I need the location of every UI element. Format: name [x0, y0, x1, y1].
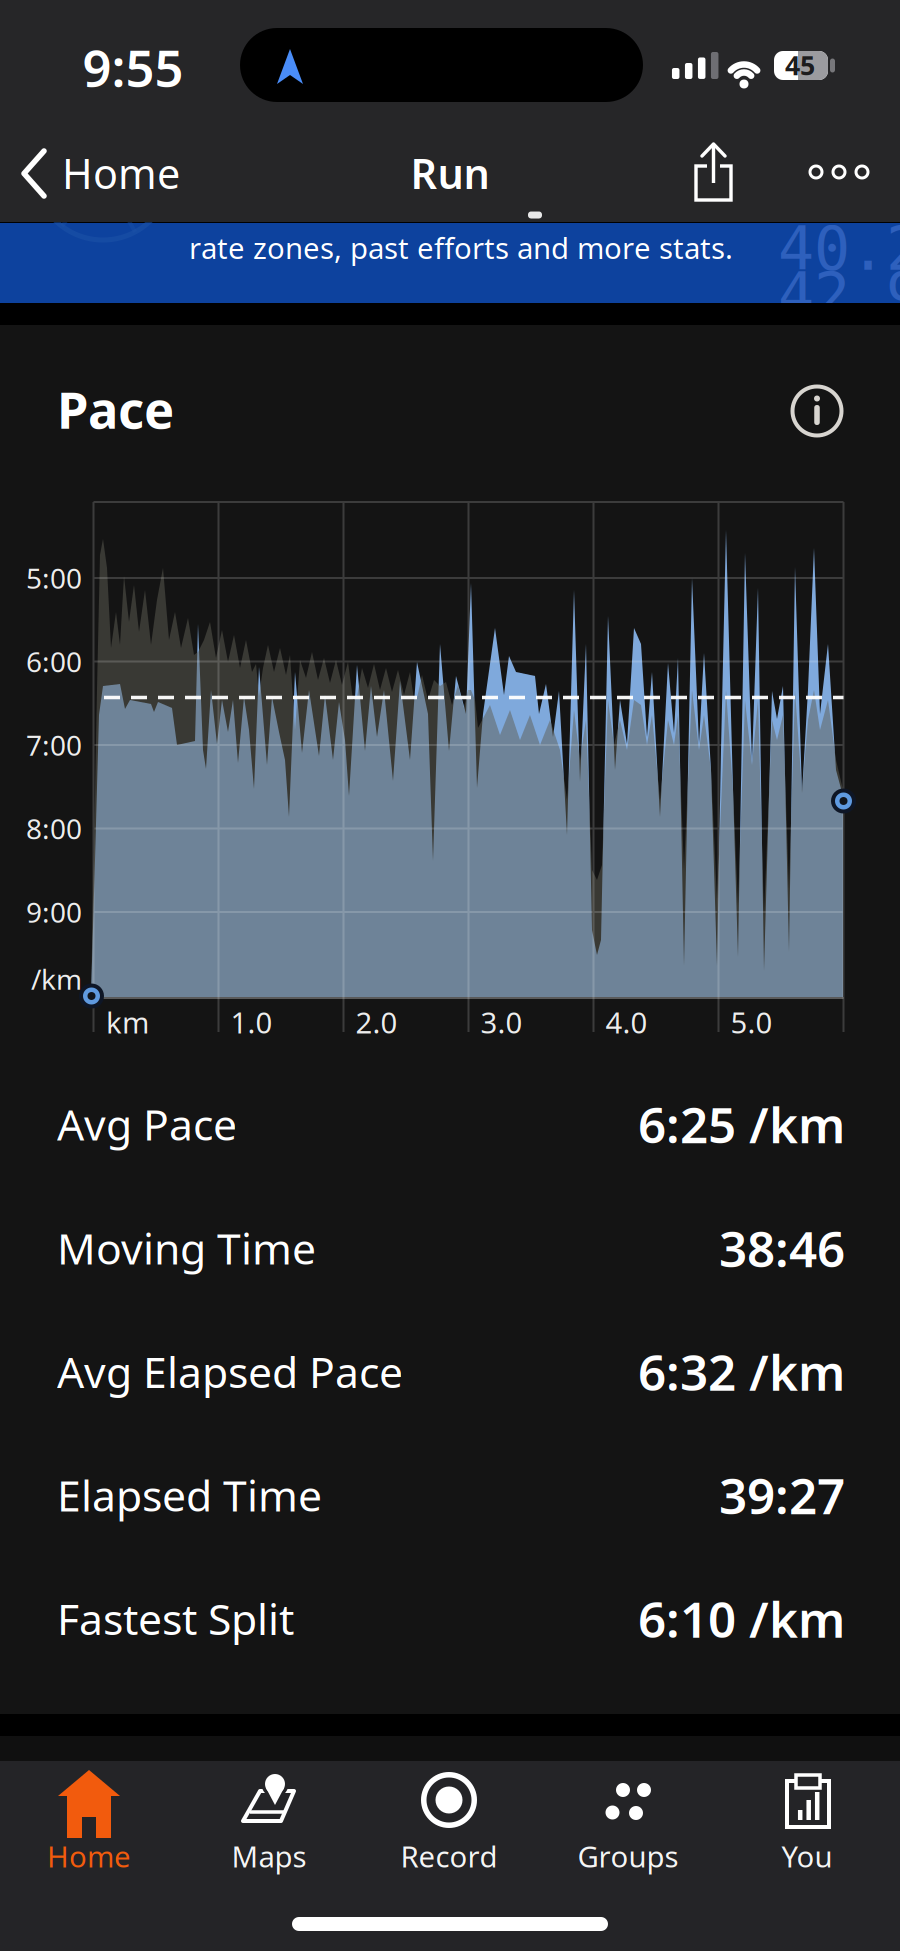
- staticText: Home: [47, 1836, 131, 1875]
- staticText: Home: [62, 146, 180, 200]
- button[interactable]: You: [717, 1761, 897, 1881]
- staticText: 3.0: [480, 1002, 522, 1041]
- staticText: Groups: [577, 1836, 678, 1875]
- staticText: Avg Pace: [57, 1096, 237, 1152]
- button[interactable]: rate zones, past efforts and more stats.: [0, 223, 900, 303]
- staticText: 45: [785, 47, 815, 83]
- button[interactable]: Share: [685, 140, 742, 206]
- staticText: 9:00: [26, 893, 82, 931]
- staticText: 6:32 /km: [638, 1339, 845, 1404]
- staticText: 39:27: [719, 1462, 845, 1528]
- button[interactable]: Groups: [538, 1761, 718, 1881]
- staticText: 1.0: [230, 1002, 272, 1041]
- staticText: /km: [31, 960, 82, 998]
- button[interactable]: More options: [803, 146, 874, 198]
- staticText: 5.0: [730, 1002, 772, 1041]
- button[interactable]: Record: [359, 1761, 539, 1881]
- staticText: rate zones, past efforts and more stats.: [189, 228, 733, 267]
- staticText: 42.9: [778, 261, 900, 329]
- staticText: 8:00: [26, 810, 82, 847]
- staticText: 38:46: [719, 1215, 845, 1281]
- button[interactable]: Back: [10, 130, 240, 218]
- staticText: 7:00: [26, 726, 82, 764]
- staticText: Maps: [231, 1836, 306, 1875]
- staticText: Moving Time: [57, 1220, 316, 1276]
- staticText: 6:10 /km: [638, 1586, 845, 1651]
- staticText: km: [106, 1002, 149, 1041]
- staticText: Elapsed Time: [57, 1467, 322, 1523]
- staticText: 6:00: [26, 643, 82, 680]
- button[interactable]: Home: [0, 1761, 179, 1881]
- staticText: 4.0: [605, 1002, 647, 1041]
- staticText: You: [781, 1836, 832, 1875]
- button[interactable]: Pace information: [786, 380, 848, 442]
- staticText: Fastest Split: [57, 1590, 294, 1647]
- button[interactable]: Maps: [179, 1761, 359, 1881]
- staticText: Pace: [57, 375, 174, 443]
- staticText: 2.0: [355, 1002, 397, 1041]
- staticText: 6:25 /km: [638, 1091, 845, 1157]
- staticText: 5:00: [26, 559, 82, 597]
- staticText: Avg Elapsed Pace: [57, 1343, 403, 1400]
- staticText: 40.2: [778, 215, 900, 283]
- staticText: Record: [400, 1836, 497, 1875]
- staticText: 9:55: [82, 33, 183, 101]
- staticText: Run: [410, 146, 489, 200]
